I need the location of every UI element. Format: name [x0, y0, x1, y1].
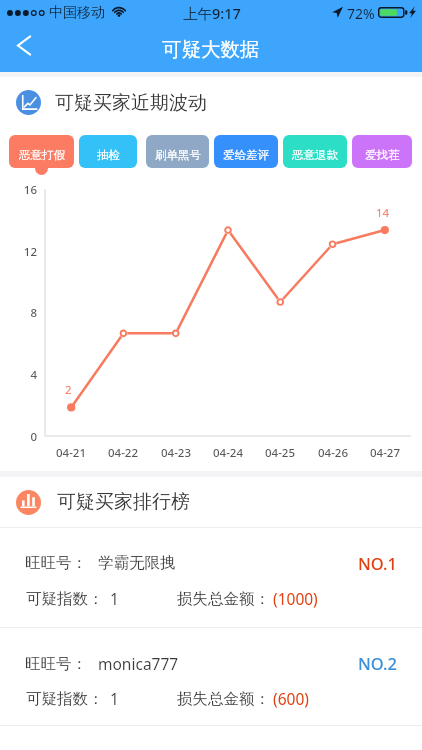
- staticText: 04-23: [150, 445, 202, 461]
- button[interactable]: 爱给差评: [214, 135, 278, 168]
- staticText: 1: [110, 688, 119, 709]
- staticText: 04-24: [202, 445, 254, 461]
- staticText: 可疑指数：: [26, 689, 104, 709]
- staticText: 04-21: [45, 445, 97, 461]
- staticText: 可疑大数据: [162, 37, 260, 62]
- staticText: 8: [11, 305, 37, 321]
- staticText: 1: [110, 588, 119, 609]
- staticText: 04-27: [359, 445, 411, 461]
- staticText: 可疑指数：: [26, 589, 104, 609]
- staticText: NO.1: [358, 552, 398, 574]
- button[interactable]: 恶意打假: [9, 135, 74, 168]
- staticText: 旺旺号：: [25, 654, 87, 674]
- staticText: 抽检: [97, 148, 120, 162]
- staticText: 爱给差评: [223, 148, 269, 162]
- button[interactable]: 抽检: [79, 135, 137, 168]
- staticText: NO.2: [358, 652, 398, 674]
- staticText: 中国移动: [49, 4, 105, 22]
- staticText: 可疑买家排行榜: [57, 490, 190, 514]
- staticText: monica777: [98, 653, 179, 674]
- staticText: 损失总金额：: [177, 589, 270, 609]
- button[interactable]: 旺旺号：: [0, 628, 422, 727]
- staticText: 学霸无限拽: [98, 553, 176, 573]
- staticText: 损失总金额：: [177, 689, 270, 709]
- staticText: (600): [273, 688, 309, 709]
- staticText: 16: [11, 182, 37, 198]
- staticText: 72%: [347, 4, 375, 23]
- staticText: (1000): [273, 588, 318, 609]
- staticText: 刷单黑号: [155, 148, 201, 162]
- staticText: 旺旺号：: [25, 553, 87, 573]
- staticText: 12: [11, 244, 37, 260]
- staticText: 可疑买家近期波动: [55, 91, 207, 115]
- staticText: 04-26: [307, 445, 359, 461]
- button[interactable]: 旺旺号：: [0, 528, 422, 627]
- button[interactable]: 恶意退款: [283, 135, 347, 168]
- staticText: 上午9:17: [183, 3, 241, 23]
- staticText: 恶意打假: [19, 148, 65, 162]
- staticText: 2: [65, 382, 72, 398]
- staticText: 0: [11, 429, 37, 445]
- button[interactable]: 刷单黑号: [146, 135, 209, 168]
- staticText: 爱找茬: [365, 148, 400, 162]
- staticText: 恶意退款: [292, 148, 338, 162]
- staticText: 04-22: [97, 445, 149, 461]
- button[interactable]: Back: [4, 26, 46, 72]
- staticText: 4: [11, 367, 37, 383]
- button[interactable]: 爱找茬: [352, 135, 412, 168]
- staticText: 14: [376, 205, 390, 221]
- staticText: 04-25: [254, 445, 306, 461]
